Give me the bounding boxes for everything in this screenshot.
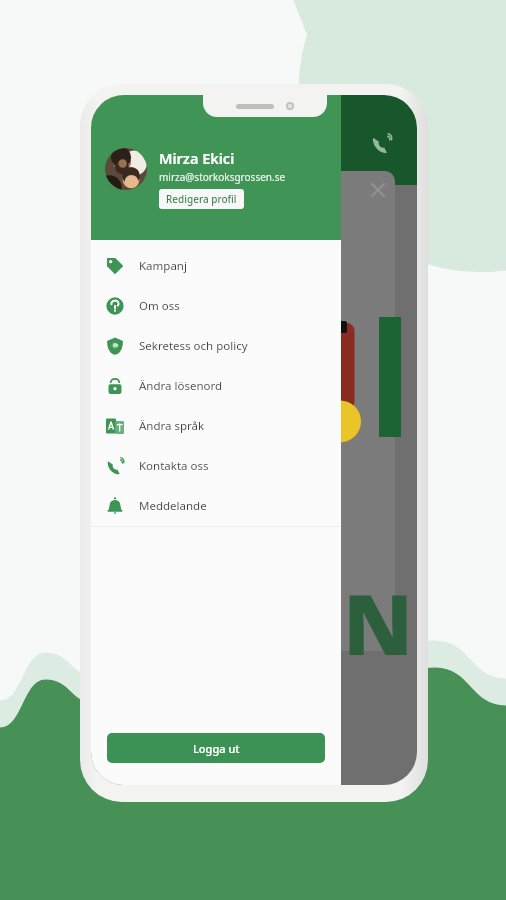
staticText: mirza@storkoksgrossen.se	[159, 170, 286, 184]
button[interactable]: Ändra lösenord	[91, 366, 341, 406]
button[interactable]: Call	[363, 125, 401, 163]
button[interactable]: Redigera profil	[159, 189, 244, 209]
button[interactable]: Kampanj	[91, 246, 341, 286]
staticText: Om oss	[139, 298, 180, 314]
staticText: Meddelande	[139, 498, 207, 514]
staticText: Kontakta oss	[139, 458, 209, 474]
staticText: Mirza Ekici	[159, 148, 235, 168]
button[interactable]: Sekretess och policy	[91, 326, 341, 366]
staticText: Logga ut	[193, 741, 240, 756]
staticText: Redigera profil	[166, 192, 237, 206]
button[interactable]: Meddelande	[91, 486, 341, 526]
button[interactable]: Logga ut	[107, 733, 325, 763]
button[interactable]: Om oss	[91, 286, 341, 326]
button[interactable]: Kontakta oss	[91, 446, 341, 486]
staticText: Sekretess och policy	[139, 338, 248, 354]
staticText: Ändra lösenord	[139, 378, 223, 394]
staticText: N	[343, 565, 414, 679]
button[interactable]: Ändra språk	[91, 406, 341, 446]
staticText: Kampanj	[139, 258, 187, 274]
staticText: Ändra språk	[139, 418, 205, 434]
